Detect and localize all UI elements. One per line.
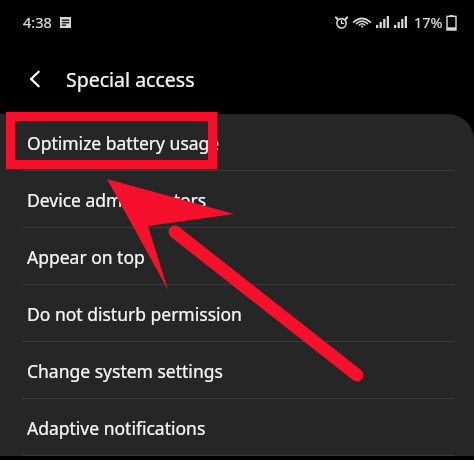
staticText: Optimize battery usage: [27, 131, 220, 155]
staticText: 4:38: [23, 12, 52, 32]
staticText: Change system settings: [27, 359, 223, 383]
button[interactable]: Optimize battery usage: [0, 114, 474, 171]
staticText: 17%: [414, 12, 443, 32]
button[interactable]: Change system settings: [0, 342, 474, 399]
button[interactable]: Navigate up: [14, 57, 58, 101]
staticText: Appear on top: [27, 245, 145, 269]
button[interactable]: Device administrators: [0, 171, 474, 228]
staticText: Special access: [66, 66, 195, 93]
staticText: Do not disturb permission: [27, 302, 242, 326]
button[interactable]: Adaptive notifications: [0, 399, 474, 456]
staticText: Device administrators: [27, 188, 207, 212]
button[interactable]: Appear on top: [0, 228, 474, 285]
button[interactable]: Do not disturb permission: [0, 285, 474, 342]
staticText: Adaptive notifications: [27, 416, 206, 440]
